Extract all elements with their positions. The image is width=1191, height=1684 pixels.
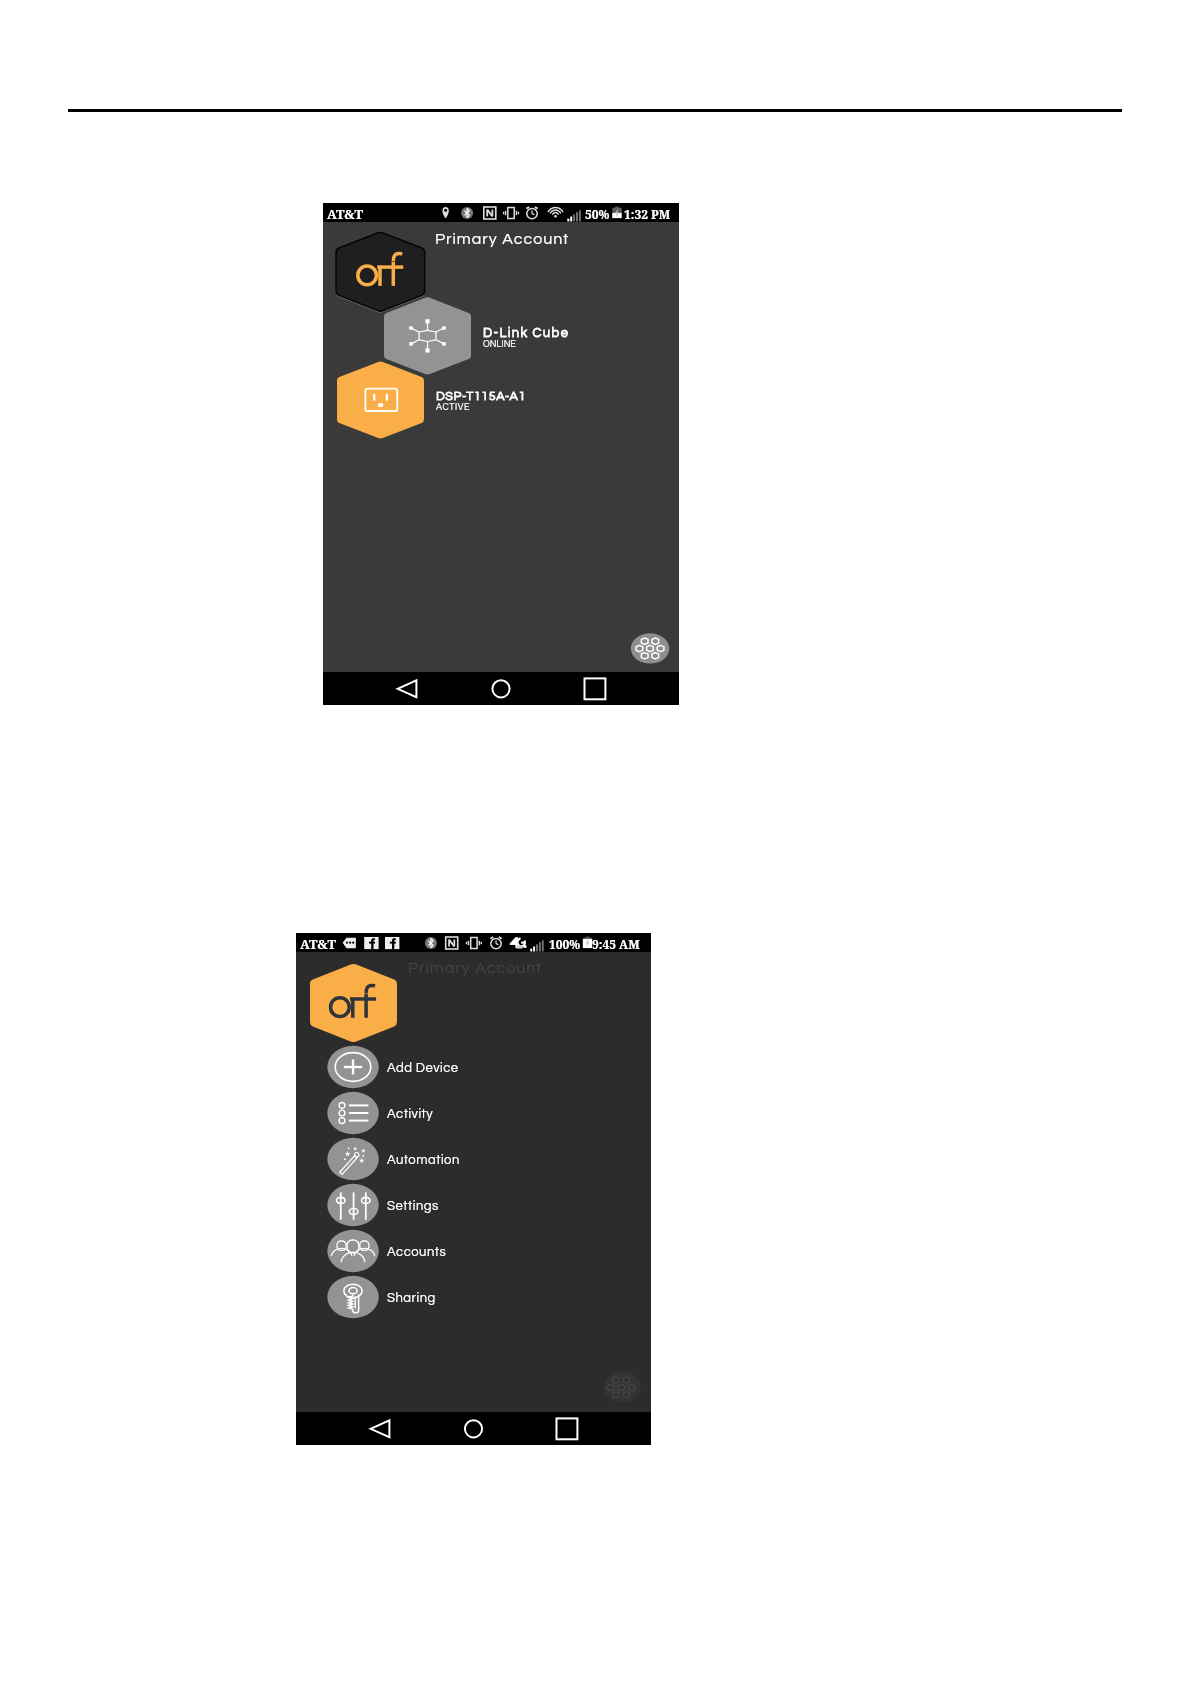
staticText: 100% xyxy=(549,936,581,952)
button[interactable] xyxy=(384,296,614,376)
staticText: ONLINE xyxy=(483,340,516,349)
staticText: Accounts xyxy=(387,1245,447,1258)
button[interactable]: Add Device xyxy=(324,1044,679,1090)
button[interactable]: Primary Account xyxy=(310,964,398,1044)
button[interactable]: Devices xyxy=(602,1369,644,1405)
staticText: Automation xyxy=(387,1153,460,1166)
staticText: Activity xyxy=(387,1107,434,1120)
button[interactable]: Accounts xyxy=(324,1228,679,1274)
staticText: Sharing xyxy=(387,1291,436,1304)
staticText: ACTIVE xyxy=(436,403,470,412)
staticText: DSP-T115A-A1 xyxy=(436,390,526,403)
button[interactable]: Activity xyxy=(324,1090,679,1136)
button[interactable]: Back xyxy=(356,1412,404,1445)
button[interactable]: Recent apps xyxy=(571,672,619,705)
staticText: Add Device xyxy=(387,1061,459,1074)
button[interactable]: Home xyxy=(450,1412,498,1445)
staticText: D-Link Cube xyxy=(483,326,570,339)
staticText: AT&T xyxy=(327,205,363,223)
button[interactable] xyxy=(337,360,607,440)
staticText: AT&T xyxy=(300,935,336,953)
staticText: 9:45 AM xyxy=(592,936,640,952)
button[interactable]: Sharing xyxy=(324,1274,679,1320)
button[interactable]: Back xyxy=(383,672,431,705)
button[interactable]: Devices xyxy=(629,631,671,666)
button[interactable]: Automation xyxy=(324,1136,679,1182)
button[interactable]: Settings xyxy=(324,1182,679,1228)
staticText: Settings xyxy=(387,1199,439,1212)
staticText: 50% xyxy=(585,206,610,222)
staticText: Primary Account xyxy=(408,960,543,976)
staticText: Primary Account xyxy=(435,231,570,247)
staticText: 1:32 PM xyxy=(624,206,671,222)
button[interactable]: Primary Account xyxy=(337,232,425,312)
button[interactable]: Recent apps xyxy=(543,1412,591,1445)
button[interactable]: Home xyxy=(477,672,525,705)
